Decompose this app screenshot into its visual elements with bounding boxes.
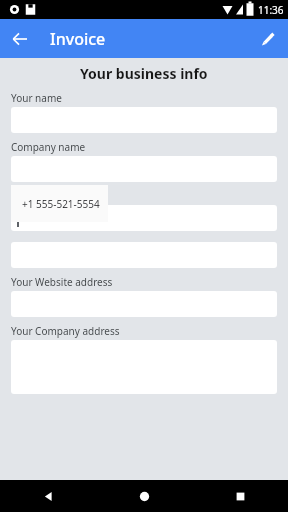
staticText: Your Company address (11, 324, 120, 338)
button[interactable] (11, 205, 277, 231)
staticText: Company name (11, 140, 86, 154)
button[interactable]: Back (0, 480, 96, 512)
button[interactable]: Edit (251, 23, 283, 55)
button[interactable]: +1 555-521-5554 (11, 185, 108, 222)
button[interactable]: Recents (192, 480, 288, 512)
staticText: Your business info (80, 64, 208, 83)
button[interactable]: Home (96, 480, 192, 512)
button[interactable]: Back (4, 23, 36, 55)
staticText: Invoice (50, 28, 106, 50)
staticText: Your Website address (11, 275, 113, 289)
staticText: Your name (11, 91, 62, 105)
staticText: +1 555-521-5554 (22, 197, 100, 211)
staticText: Your Mobile no (11, 189, 83, 203)
staticText: 11:36 (258, 3, 284, 17)
